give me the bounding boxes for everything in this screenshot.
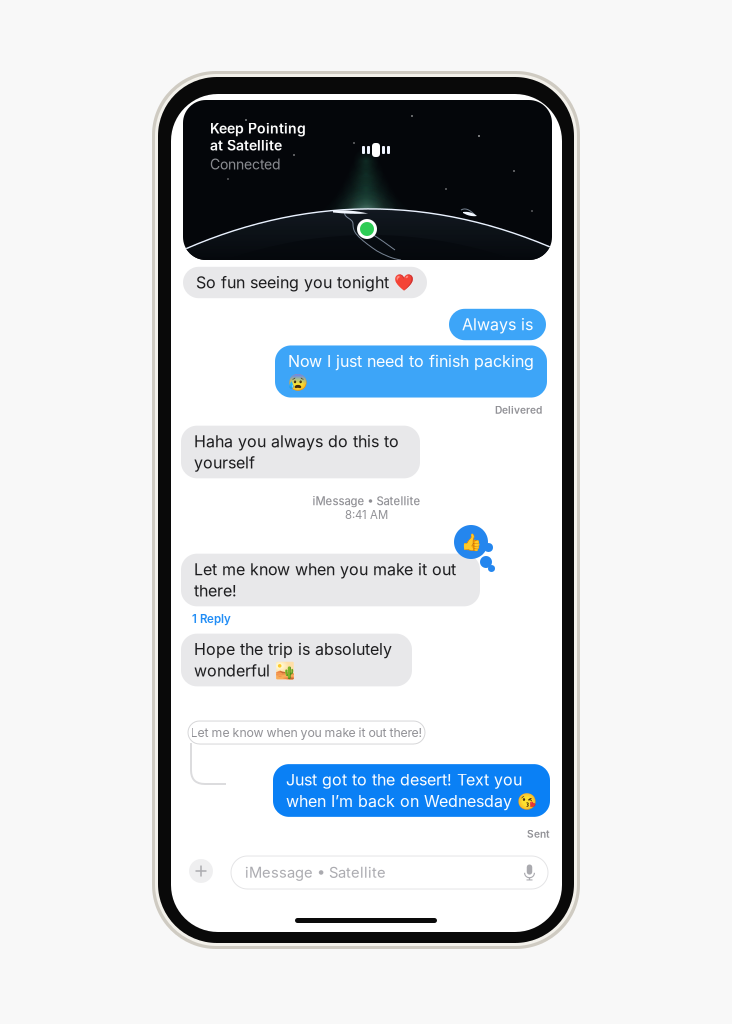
staticText: iMessage • Satellite	[312, 494, 420, 508]
button[interactable]: 1 Reply	[192, 612, 231, 626]
staticText: Connected	[210, 156, 281, 173]
button[interactable]: Hope the trip is absolutely wonderful 🏜️	[181, 634, 412, 686]
staticText: Just got to the desert! Text you when I’…	[286, 770, 537, 811]
button[interactable]: Always is	[449, 309, 546, 340]
staticText: Sent	[527, 828, 550, 840]
staticText: at Satellite	[210, 137, 282, 154]
staticText: So fun seeing you tonight ❤️	[196, 273, 414, 292]
staticText: 8:41 AM	[345, 508, 388, 522]
button[interactable]: Just got to the desert! Text you when I’…	[273, 764, 550, 817]
button[interactable]: Now I just need to finish packing 😰	[275, 345, 547, 397]
staticText: Hope the trip is absolutely wonderful 🏜️	[194, 640, 392, 680]
staticText: 1 Reply	[192, 612, 231, 626]
button[interactable]: Add attachment	[189, 859, 213, 883]
staticText: Always is	[462, 315, 533, 334]
button[interactable]: Let me know when you make it out there!	[181, 554, 480, 606]
button[interactable]: iMessage • Satellite	[231, 856, 548, 889]
staticText: Now I just need to finish packing 😰	[288, 351, 534, 391]
staticText: Let me know when you make it out there!	[194, 560, 456, 600]
staticText: Delivered	[495, 404, 542, 416]
button[interactable]: Let me know when you make it out there!	[188, 721, 425, 744]
staticText: Keep Pointing	[210, 120, 306, 137]
button[interactable]: Haha you always do this to yourself	[181, 426, 420, 478]
staticText: Let me know when you make it out there!	[190, 725, 422, 740]
button[interactable]: So fun seeing you tonight ❤️	[183, 267, 427, 298]
staticText: iMessage • Satellite	[245, 864, 386, 881]
staticText: 👍	[460, 532, 481, 552]
staticText: Haha you always do this to yourself	[194, 432, 399, 472]
